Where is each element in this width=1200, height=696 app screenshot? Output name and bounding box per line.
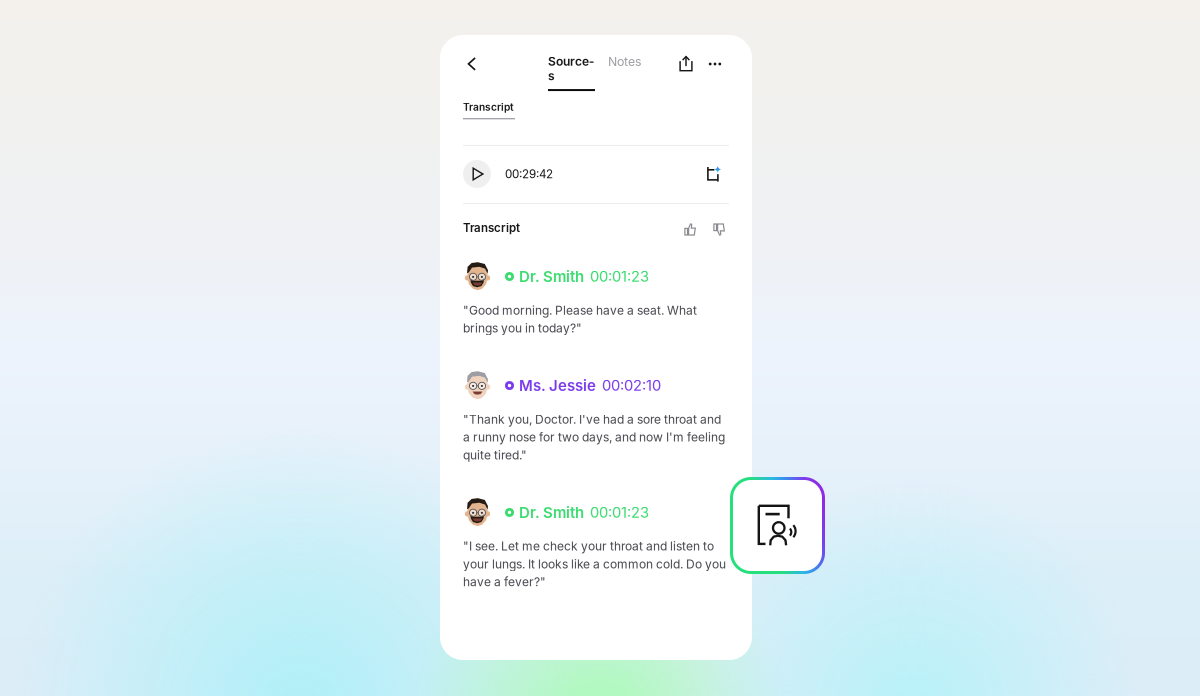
staticText: 00:02:10: [602, 377, 661, 394]
staticText: Sources: [548, 54, 594, 83]
button[interactable]: Create clip: [707, 166, 722, 182]
button[interactable]: Share: [674, 51, 698, 77]
staticText: "Good morning. Please have a seat. What …: [463, 303, 697, 335]
staticText: "I see. Let me check your throat and lis…: [463, 539, 726, 589]
button[interactable]: Back: [459, 51, 485, 77]
button[interactable]: More options: [703, 51, 727, 77]
button[interactable]: Good response: [682, 222, 698, 237]
staticText: Dr. Smith: [519, 503, 584, 521]
button[interactable]: Bad response: [711, 222, 727, 237]
staticText: Transcript: [463, 221, 520, 235]
staticText: Ms. Jessie: [519, 376, 596, 395]
button[interactable]: Sources: [548, 54, 595, 91]
staticText: 00:01:23: [590, 504, 649, 521]
button[interactable]: Transcript: [463, 101, 515, 119]
staticText: Dr. Smith: [519, 267, 584, 286]
staticText: 00:29:42: [505, 167, 553, 181]
staticText: "Thank you, Doctor. I've had a sore thro…: [463, 412, 725, 462]
staticText: 00:01:23: [590, 268, 649, 285]
staticText: Transcript: [463, 101, 514, 113]
staticText: Notes: [608, 54, 641, 69]
button[interactable]: Play: [463, 160, 491, 188]
button[interactable]: Notes: [608, 54, 641, 69]
